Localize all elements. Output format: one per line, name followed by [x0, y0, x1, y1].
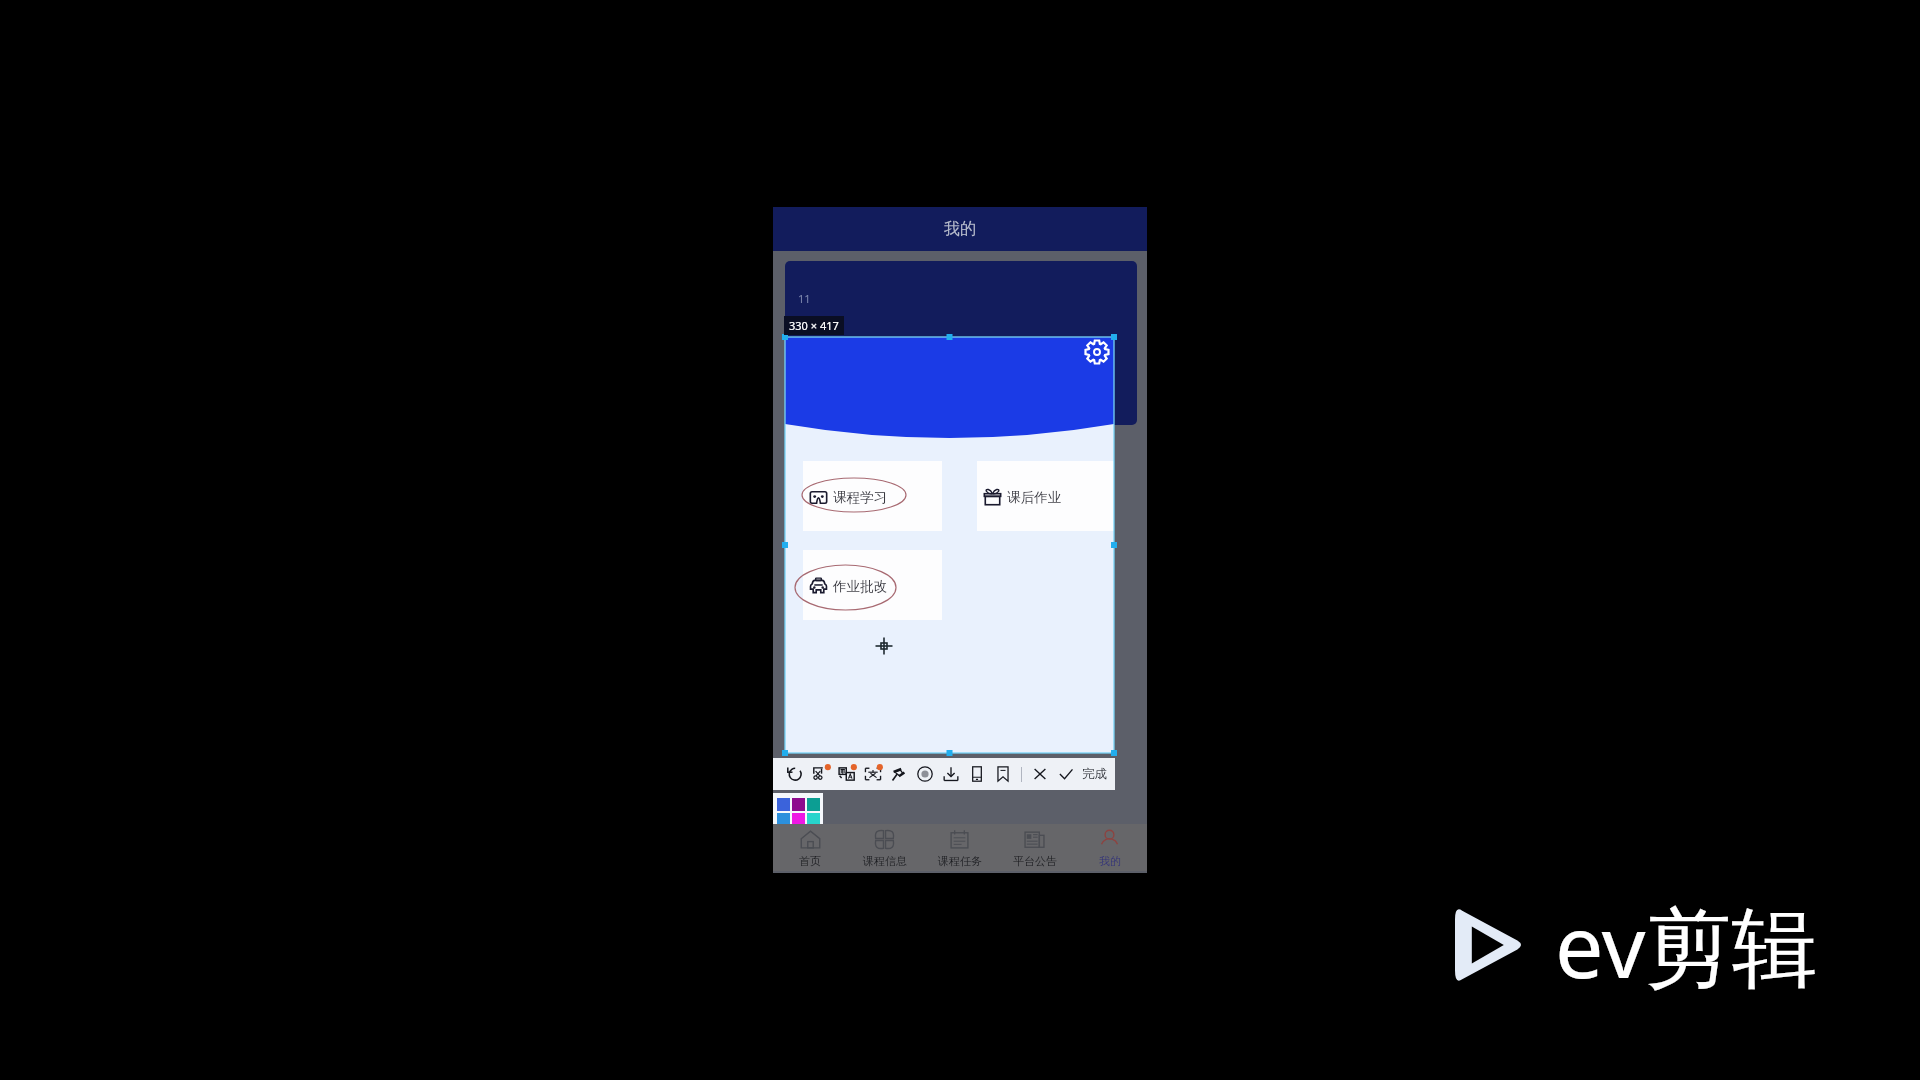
button[interactable]: 课程信息: [847, 824, 922, 871]
button[interactable]: Pin: [886, 758, 912, 790]
button[interactable]: [792, 813, 805, 826]
button[interactable]: Settings: [1083, 338, 1111, 366]
button[interactable]: Record: [912, 758, 938, 790]
button[interactable]: 我的: [773, 207, 1147, 251]
button[interactable]: Close: [1027, 758, 1053, 790]
staticText: 我的: [1099, 854, 1121, 868]
button[interactable]: Crop: [808, 758, 834, 790]
staticText: 330 × 417: [789, 318, 839, 333]
staticText: 课后作业: [1007, 489, 1062, 506]
staticText: 课程信息: [863, 854, 907, 868]
button[interactable]: [807, 813, 820, 826]
staticText: 首页: [799, 854, 821, 868]
button[interactable]: Extract text: [860, 758, 886, 790]
staticText: 平台公告: [1013, 854, 1057, 868]
button[interactable]: [777, 813, 790, 826]
button[interactable]: Long screenshot: [964, 758, 990, 790]
staticText: ev剪辑: [1555, 886, 1818, 1003]
staticText: 11: [798, 291, 811, 306]
button[interactable]: 平台公告: [997, 824, 1072, 871]
staticText: 作业批改: [833, 578, 888, 595]
staticText: 课程任务: [938, 854, 982, 868]
staticText: 完成: [1082, 766, 1107, 782]
button[interactable]: Confirm: [1053, 758, 1079, 790]
button[interactable]: Bookmark: [990, 758, 1016, 790]
button[interactable]: 首页: [773, 824, 847, 871]
staticText: 我的: [944, 219, 976, 239]
button[interactable]: Undo: [782, 758, 808, 790]
button[interactable]: Download: [938, 758, 964, 790]
button[interactable]: 课后作业: [977, 461, 1114, 531]
button[interactable]: 我的: [1072, 824, 1147, 871]
button[interactable]: 课程任务: [922, 824, 997, 871]
button[interactable]: 课程学习: [803, 461, 942, 531]
button[interactable]: Translate: [834, 758, 860, 790]
staticText: 课程学习: [833, 489, 888, 506]
button[interactable]: 作业批改: [803, 550, 942, 620]
button[interactable]: 完成: [1079, 766, 1113, 782]
